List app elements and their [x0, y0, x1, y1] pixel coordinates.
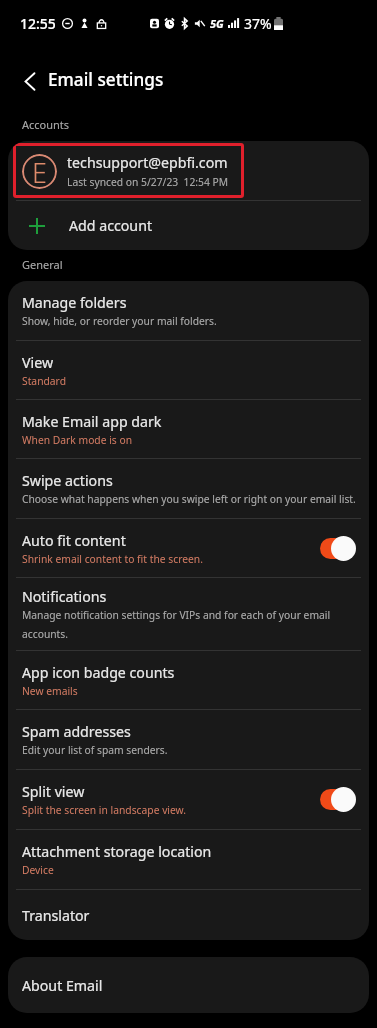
button[interactable]: Attachment storage location [8, 830, 369, 890]
staticText: Split the screen in landscape view. [22, 803, 187, 817]
staticText: App icon badge counts [22, 663, 175, 682]
staticText: Add account [69, 216, 153, 235]
staticText: Edit your list of spam senders. [22, 743, 168, 757]
button[interactable]: Navigate up [12, 61, 48, 97]
staticText: Standard [22, 374, 66, 388]
button[interactable]: Swipe actions [8, 459, 369, 519]
button[interactable]: App icon badge counts [8, 651, 369, 710]
staticText: When Dark mode is on [22, 433, 133, 447]
button[interactable]: View [8, 341, 369, 400]
staticText: Show, hide, or reorder your mail folders… [22, 314, 217, 328]
staticText: Manage folders [22, 293, 127, 312]
staticText: 5G [210, 16, 224, 31]
staticText: Choose what happens when you swipe left … [22, 492, 356, 506]
staticText: 12:55 [20, 14, 56, 33]
staticText: Attachment storage location [22, 842, 212, 861]
button[interactable]: Add account [8, 201, 369, 250]
staticText: Shrink email content to fit the screen. [22, 552, 203, 566]
staticText: Translator [22, 906, 90, 925]
button[interactable]: Toggle Split view [319, 787, 356, 812]
button[interactable]: E [8, 141, 369, 200]
staticText: Last synced on 5/27/23 12:54 PM [67, 175, 229, 189]
staticText: Split view [22, 782, 85, 801]
button[interactable]: About Email [8, 957, 369, 1013]
staticText: Email settings [48, 68, 164, 91]
staticText: Manage notification settings for VIPs an… [22, 608, 361, 641]
button[interactable]: Spam addresses [8, 710, 369, 770]
staticText: New emails [22, 684, 78, 698]
staticText: 37% [244, 14, 272, 33]
staticText: About Email [22, 976, 103, 995]
button[interactable]: Toggle Auto fit content [319, 536, 356, 561]
staticText: techsupport@epbfi.com [67, 153, 228, 172]
button[interactable]: Notifications [8, 578, 369, 651]
staticText: Spam addresses [22, 722, 131, 741]
button[interactable]: Manage folders [8, 281, 369, 341]
button[interactable]: Make Email app dark [8, 400, 369, 459]
staticText: Notifications [22, 587, 107, 606]
button[interactable]: Translator [8, 890, 369, 940]
button[interactable]: Split view [8, 770, 369, 830]
button[interactable]: Auto fit content [8, 519, 369, 578]
staticText: E [32, 154, 47, 189]
staticText: View [22, 353, 54, 372]
staticText: Make Email app dark [22, 412, 162, 431]
staticText: Device [22, 863, 54, 877]
staticText: Accounts [22, 117, 70, 132]
staticText: Swipe actions [22, 471, 113, 490]
staticText: Auto fit content [22, 531, 126, 550]
staticText: General [22, 257, 63, 272]
